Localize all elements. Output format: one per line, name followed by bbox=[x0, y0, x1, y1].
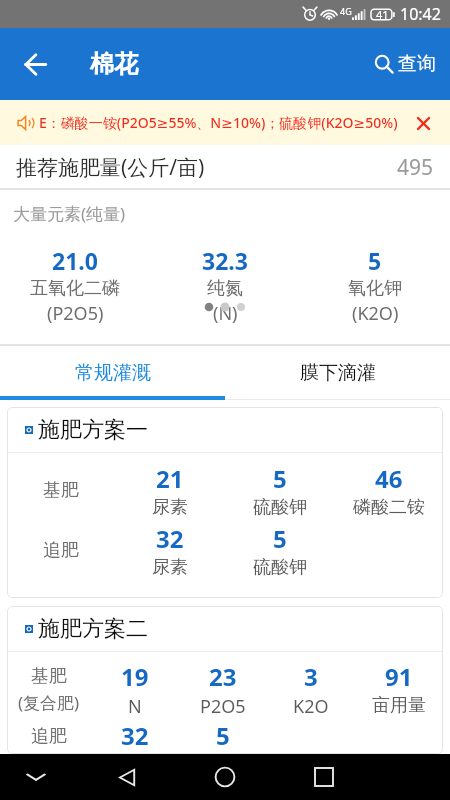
staticText: 查询 bbox=[398, 52, 436, 76]
staticText: 推荐施肥量(公斤/亩) bbox=[16, 153, 205, 182]
staticText: 5 bbox=[216, 719, 230, 752]
staticText: E：磷酸一铵(P2O5≥55%、N≥10%)；硫酸钾(K2O≥50%) bbox=[39, 113, 398, 132]
button[interactable]: 膜下滴灌 bbox=[225, 346, 450, 400]
staticText: 尿素 bbox=[152, 556, 188, 579]
staticText: 21 bbox=[156, 462, 184, 495]
button[interactable]: 查询 bbox=[374, 52, 436, 76]
staticText: 磷酸二铵 bbox=[353, 496, 425, 519]
staticText: 32 bbox=[121, 719, 149, 752]
staticText: 膜下滴灌 bbox=[300, 361, 376, 385]
staticText: (N) bbox=[213, 301, 238, 326]
staticText: 追肥 bbox=[43, 539, 79, 562]
staticText: N bbox=[128, 694, 142, 719]
staticText: 3 bbox=[304, 660, 318, 693]
staticText: 21.0 bbox=[52, 245, 98, 276]
staticText: 纯氮 bbox=[207, 277, 243, 300]
button[interactable]: Back bbox=[13, 42, 57, 86]
staticText: 常规灌溉 bbox=[75, 361, 151, 385]
staticText: K2O bbox=[293, 694, 329, 719]
staticText: 32 bbox=[156, 522, 184, 555]
staticText: 495 bbox=[397, 153, 434, 182]
staticText: 硫酸钾 bbox=[253, 496, 307, 519]
staticText: 氧化钾 bbox=[348, 277, 402, 300]
staticText: 32.3 bbox=[202, 245, 248, 276]
staticText: 46 bbox=[375, 462, 403, 495]
staticText: 大量元素(纯量) bbox=[13, 202, 126, 225]
button[interactable]: 常规灌溉 bbox=[0, 346, 225, 400]
staticText: 硫酸钾 bbox=[253, 556, 307, 579]
button[interactable]: Recents bbox=[302, 755, 346, 799]
staticText: 基肥 bbox=[43, 479, 79, 502]
staticText: (K2O) bbox=[352, 301, 399, 326]
staticText: 5 bbox=[273, 522, 287, 555]
button[interactable]: Close bbox=[410, 110, 436, 136]
staticText: 5 bbox=[368, 245, 382, 276]
staticText: 亩用量 bbox=[372, 694, 426, 717]
staticText: (复合肥) bbox=[18, 691, 80, 714]
staticText: 19 bbox=[121, 660, 149, 693]
button[interactable]: 施肥方案二 bbox=[25, 606, 443, 651]
staticText: 追肥 bbox=[31, 725, 67, 748]
button[interactable]: Hide keyboard bbox=[14, 755, 58, 799]
staticText: 91 bbox=[385, 660, 413, 693]
staticText: 23 bbox=[209, 660, 237, 693]
staticText: 5 bbox=[273, 462, 287, 495]
staticText: 41 bbox=[376, 7, 389, 22]
button[interactable]: 施肥方案一 bbox=[25, 407, 443, 452]
staticText: 10:42 bbox=[400, 3, 441, 25]
button[interactable]: Home bbox=[203, 755, 247, 799]
staticText: P2O5 bbox=[200, 694, 246, 719]
staticText: 五氧化二磷 bbox=[30, 277, 120, 300]
staticText: 尿素 bbox=[152, 496, 188, 519]
staticText: 棉花 bbox=[90, 49, 138, 79]
staticText: 基肥 bbox=[31, 665, 67, 688]
button[interactable]: Back bbox=[105, 755, 149, 799]
staticText: 施肥方案一 bbox=[38, 416, 148, 444]
staticText: 4G bbox=[340, 5, 352, 17]
staticText: 施肥方案二 bbox=[38, 615, 148, 643]
staticText: (P2O5) bbox=[47, 301, 104, 326]
